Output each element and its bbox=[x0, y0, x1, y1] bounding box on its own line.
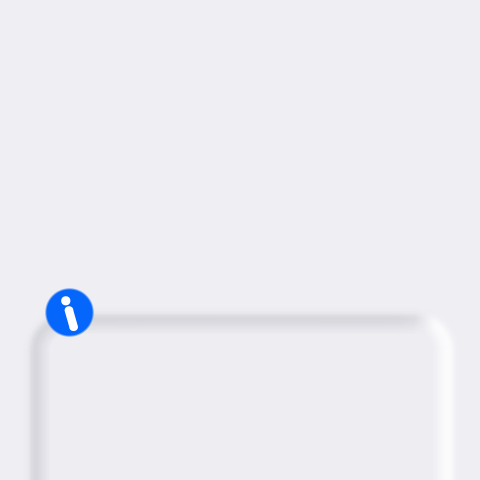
button[interactable]: Information bbox=[46, 289, 93, 336]
